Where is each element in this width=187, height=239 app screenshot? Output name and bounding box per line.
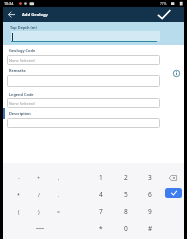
button[interactable] bbox=[7, 118, 160, 128]
button[interactable]: / bbox=[28, 186, 49, 203]
button[interactable]: 5 bbox=[115, 186, 137, 203]
staticText: = bbox=[57, 208, 60, 215]
staticText: ) bbox=[38, 208, 40, 215]
button[interactable]: None Selected bbox=[7, 98, 160, 108]
staticText: None Selected bbox=[9, 101, 35, 106]
button[interactable]: 9 bbox=[139, 203, 161, 220]
button[interactable]: ( bbox=[8, 203, 29, 220]
button[interactable] bbox=[7, 75, 160, 87]
staticText: 1 bbox=[99, 173, 103, 182]
button[interactable]: 4 bbox=[90, 186, 112, 203]
button[interactable]: 8 bbox=[115, 203, 137, 220]
staticText: 4 bbox=[99, 190, 103, 199]
button[interactable]: * bbox=[8, 186, 29, 203]
button[interactable] bbox=[165, 188, 182, 198]
staticText: . bbox=[58, 191, 60, 198]
staticText: ( bbox=[18, 208, 20, 215]
staticText: * bbox=[99, 224, 103, 233]
button[interactable]: + bbox=[28, 169, 49, 186]
staticText: 9 bbox=[148, 207, 152, 216]
staticText: 7 bbox=[99, 207, 103, 216]
staticText: Add Geology bbox=[22, 12, 48, 18]
staticText: 5 bbox=[124, 190, 128, 199]
button[interactable]: 7 bbox=[90, 203, 112, 220]
staticText: # bbox=[148, 224, 153, 233]
staticText: Remarks bbox=[9, 68, 26, 73]
staticText: + bbox=[37, 174, 40, 181]
staticText: Description bbox=[9, 111, 31, 116]
button[interactable]: 2 bbox=[115, 169, 137, 186]
button[interactable]: Top Depth (m) bbox=[3, 22, 184, 45]
staticText: 3 bbox=[148, 173, 152, 182]
staticText: Geology Code bbox=[9, 48, 36, 53]
button[interactable]: 0 bbox=[115, 220, 137, 237]
button[interactable]: = bbox=[48, 203, 69, 220]
button[interactable]: * bbox=[90, 220, 112, 237]
staticText: Top Depth (m) bbox=[10, 25, 37, 30]
staticText: * bbox=[17, 191, 20, 198]
button[interactable] bbox=[153, 7, 177, 22]
button[interactable] bbox=[172, 69, 181, 78]
button[interactable]: None Selected bbox=[7, 55, 160, 65]
button[interactable]: # bbox=[139, 220, 161, 237]
button[interactable] bbox=[164, 169, 182, 186]
staticText: 6 bbox=[148, 190, 152, 199]
staticText: 10:34 bbox=[4, 1, 14, 6]
button[interactable]: , bbox=[48, 169, 69, 186]
staticText: 77% bbox=[160, 2, 167, 6]
staticText: , bbox=[58, 174, 60, 181]
button[interactable]: ) bbox=[28, 203, 49, 220]
staticText: / bbox=[38, 191, 40, 198]
staticText: 0 bbox=[124, 224, 128, 233]
button[interactable]: 6 bbox=[139, 186, 161, 203]
staticText: 2 bbox=[124, 173, 128, 182]
button[interactable]: 3 bbox=[139, 169, 161, 186]
staticText: - bbox=[18, 174, 20, 181]
staticText: Legend Code bbox=[9, 92, 34, 97]
staticText: None Selected bbox=[9, 58, 35, 63]
button[interactable]: - bbox=[8, 169, 29, 186]
staticText: 8 bbox=[124, 207, 128, 216]
button[interactable]: 1 bbox=[90, 169, 112, 186]
button[interactable] bbox=[6, 8, 18, 21]
